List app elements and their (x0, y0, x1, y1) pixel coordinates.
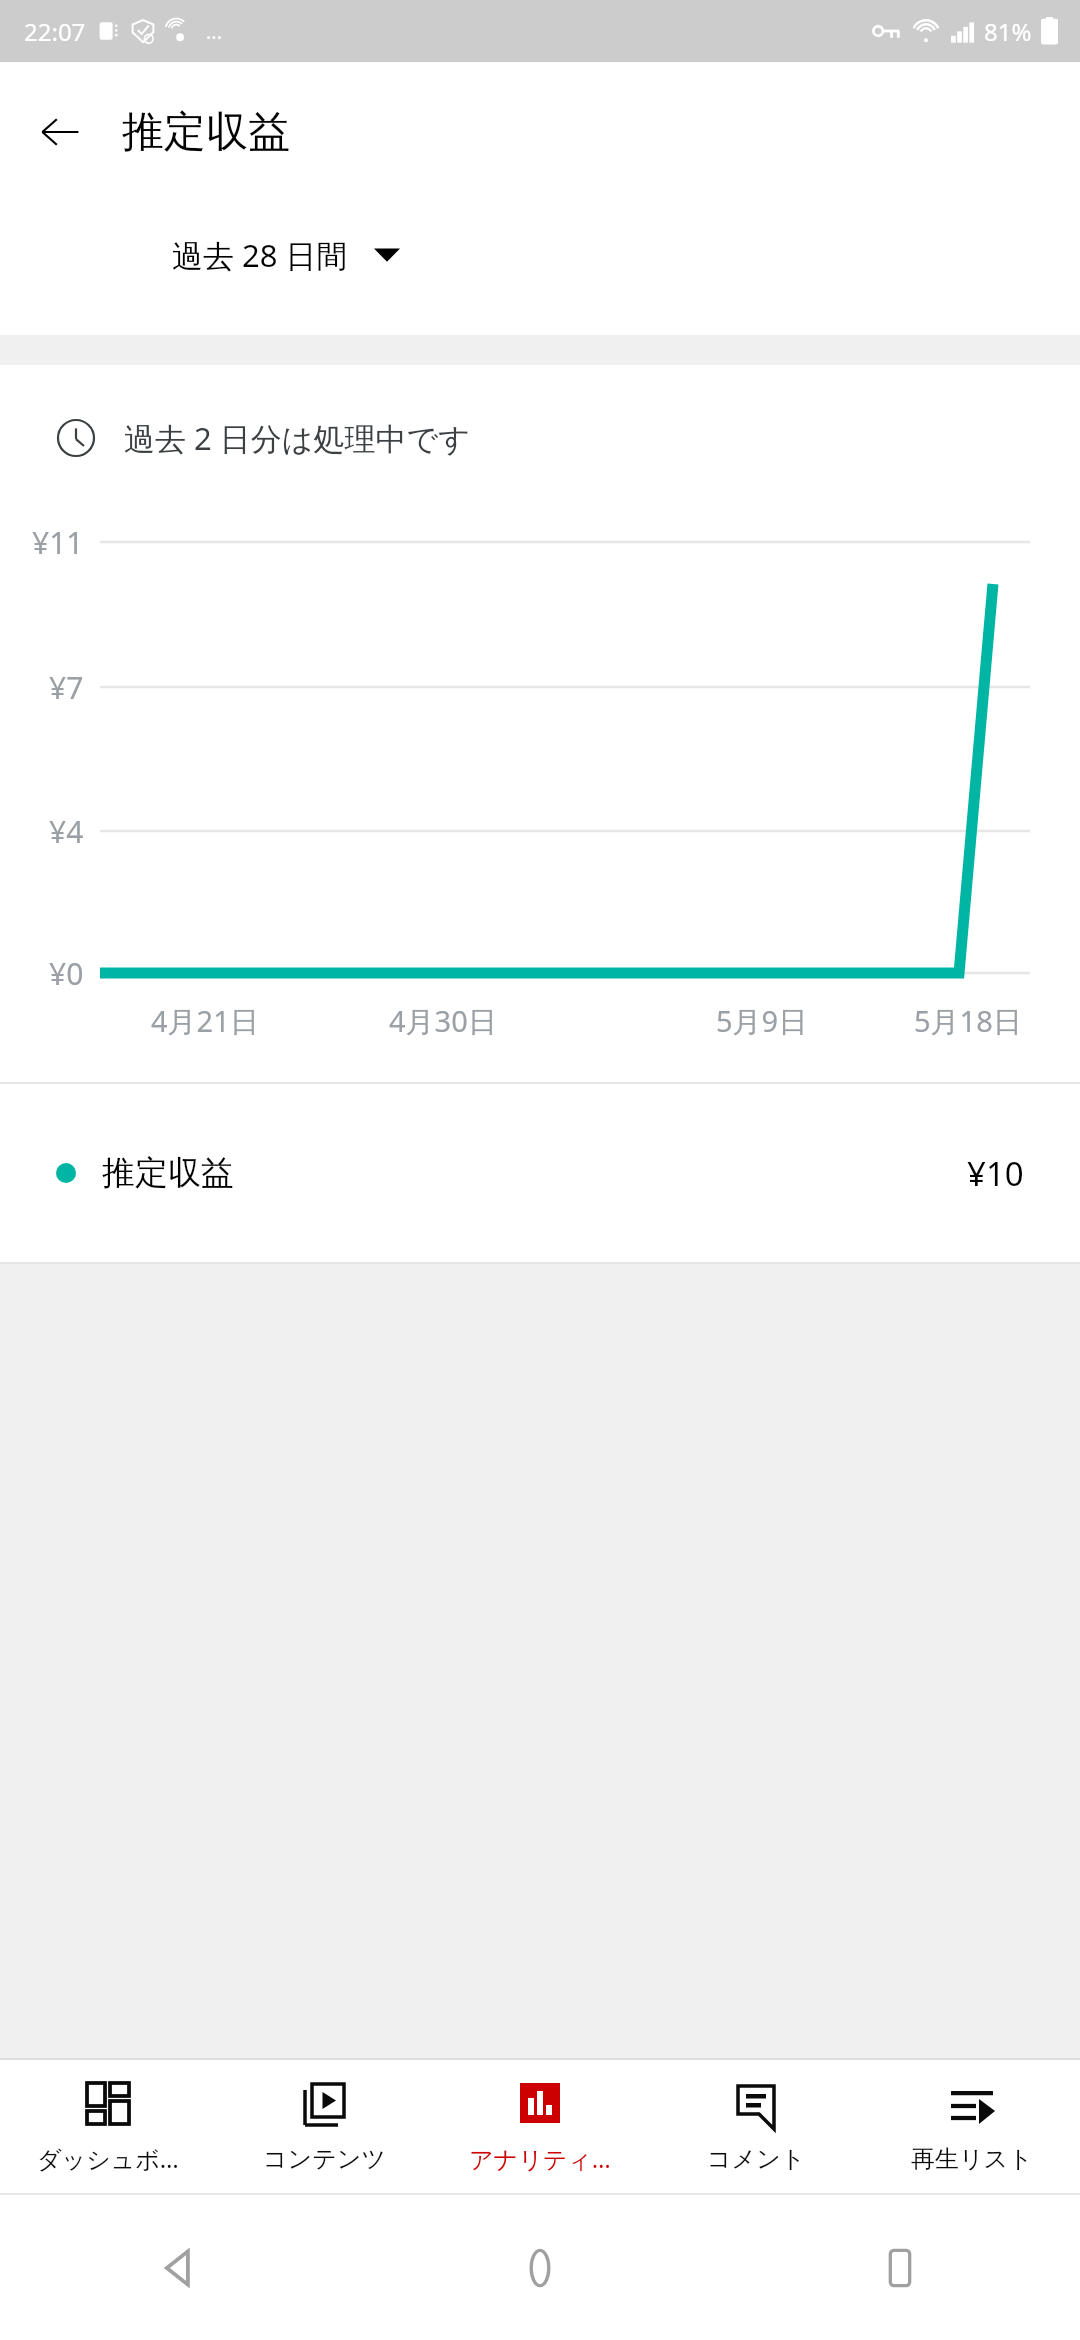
staticText: ... (206, 18, 223, 45)
button[interactable]: アナリティ… (432, 2060, 648, 2193)
staticText: 81% (984, 15, 1032, 48)
staticText: 4月30日 (389, 1001, 497, 1041)
staticText: 22:07 (24, 15, 86, 48)
staticText: ダッシュボ… (37, 2142, 179, 2175)
staticText: ¥7 (49, 667, 84, 708)
staticText: アナリティ… (469, 2142, 611, 2175)
staticText: 5月9日 (716, 1001, 808, 1041)
button[interactable]: ダッシュボ… (0, 2060, 216, 2193)
staticText: 4月21日 (151, 1001, 259, 1041)
staticText: ¥4 (49, 811, 84, 852)
button[interactable]: コメント (648, 2060, 864, 2193)
staticText: コンテンツ (263, 2144, 386, 2174)
staticText: 過去 28 日間 (172, 234, 348, 276)
staticText: 推定収益 (102, 1152, 234, 1194)
button[interactable]: コンテンツ (216, 2060, 432, 2193)
staticText: 再生リスト (911, 2144, 1033, 2174)
staticText: コメント (707, 2144, 806, 2174)
staticText: ¥0 (49, 953, 84, 994)
button[interactable]: 推定収益 (0, 1084, 1080, 1262)
staticText: 過去 2 日分は処理中です (124, 417, 471, 459)
button[interactable]: 戻る (18, 90, 102, 174)
button[interactable]: 最近のアプリ (720, 2195, 1080, 2340)
staticText: ¥10 (967, 1151, 1024, 1196)
button[interactable]: 再生リスト (864, 2060, 1080, 2193)
staticText: ¥11 (32, 522, 84, 563)
staticText: 推定収益 (122, 106, 290, 159)
staticText: 5月18日 (914, 1001, 1022, 1041)
button[interactable]: ホーム (360, 2195, 720, 2340)
button[interactable]: 過去 28 日間 (172, 202, 400, 307)
button[interactable]: 戻る (0, 2195, 360, 2340)
